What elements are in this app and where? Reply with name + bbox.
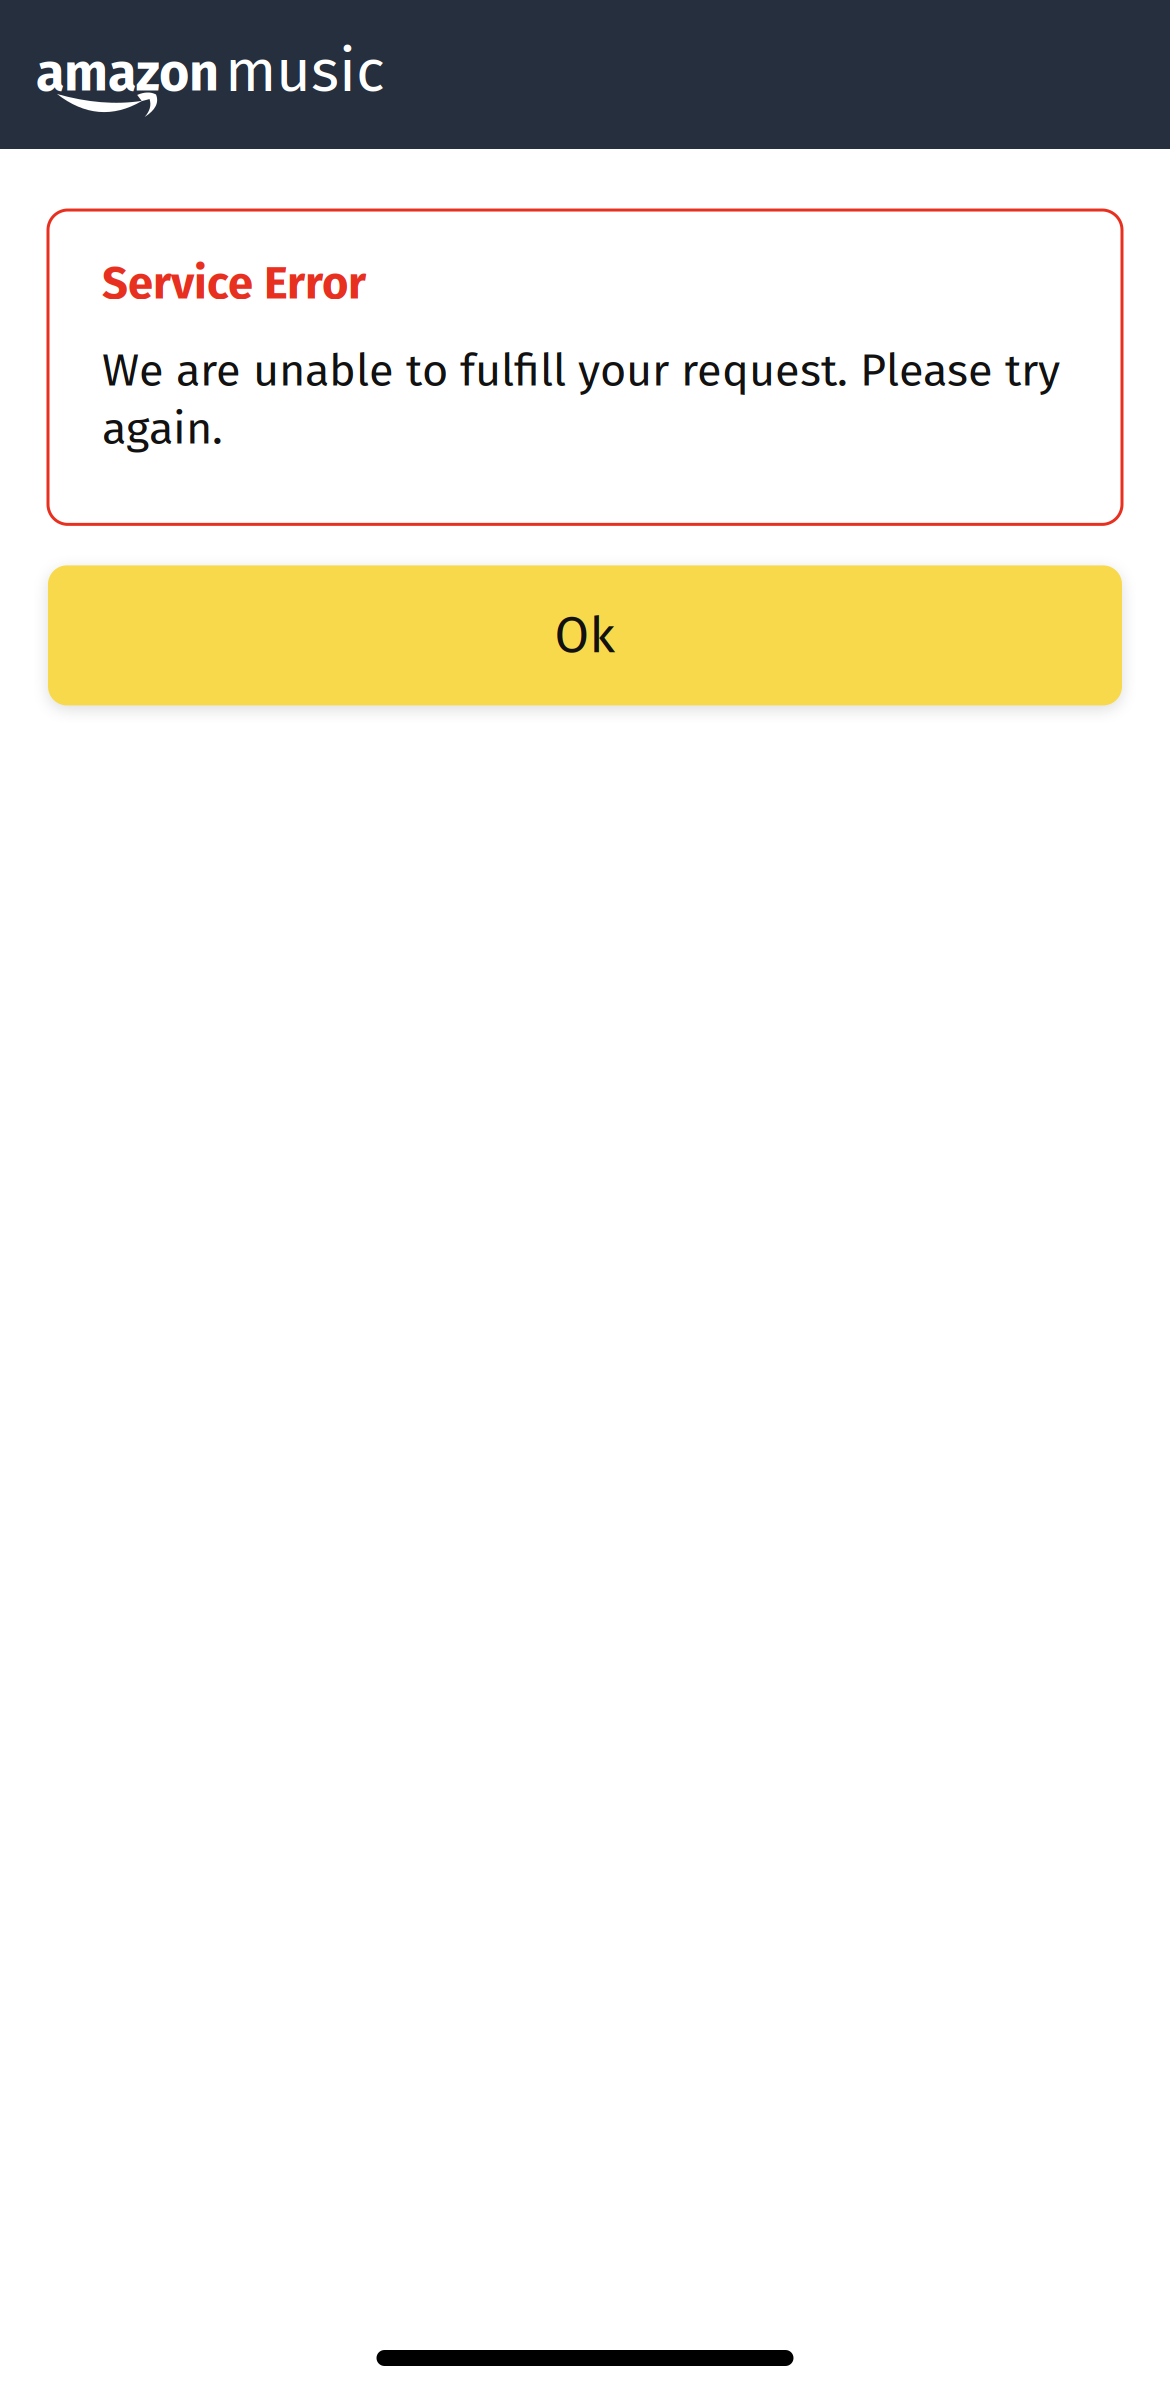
staticText: We are unable to fulfill your request. P…	[102, 343, 1060, 455]
staticText: Ok	[554, 605, 615, 665]
staticText: amazon	[36, 42, 219, 104]
staticText: music	[225, 35, 385, 107]
button[interactable]: Ok	[48, 565, 1122, 705]
staticText: Service Error	[102, 256, 366, 310]
